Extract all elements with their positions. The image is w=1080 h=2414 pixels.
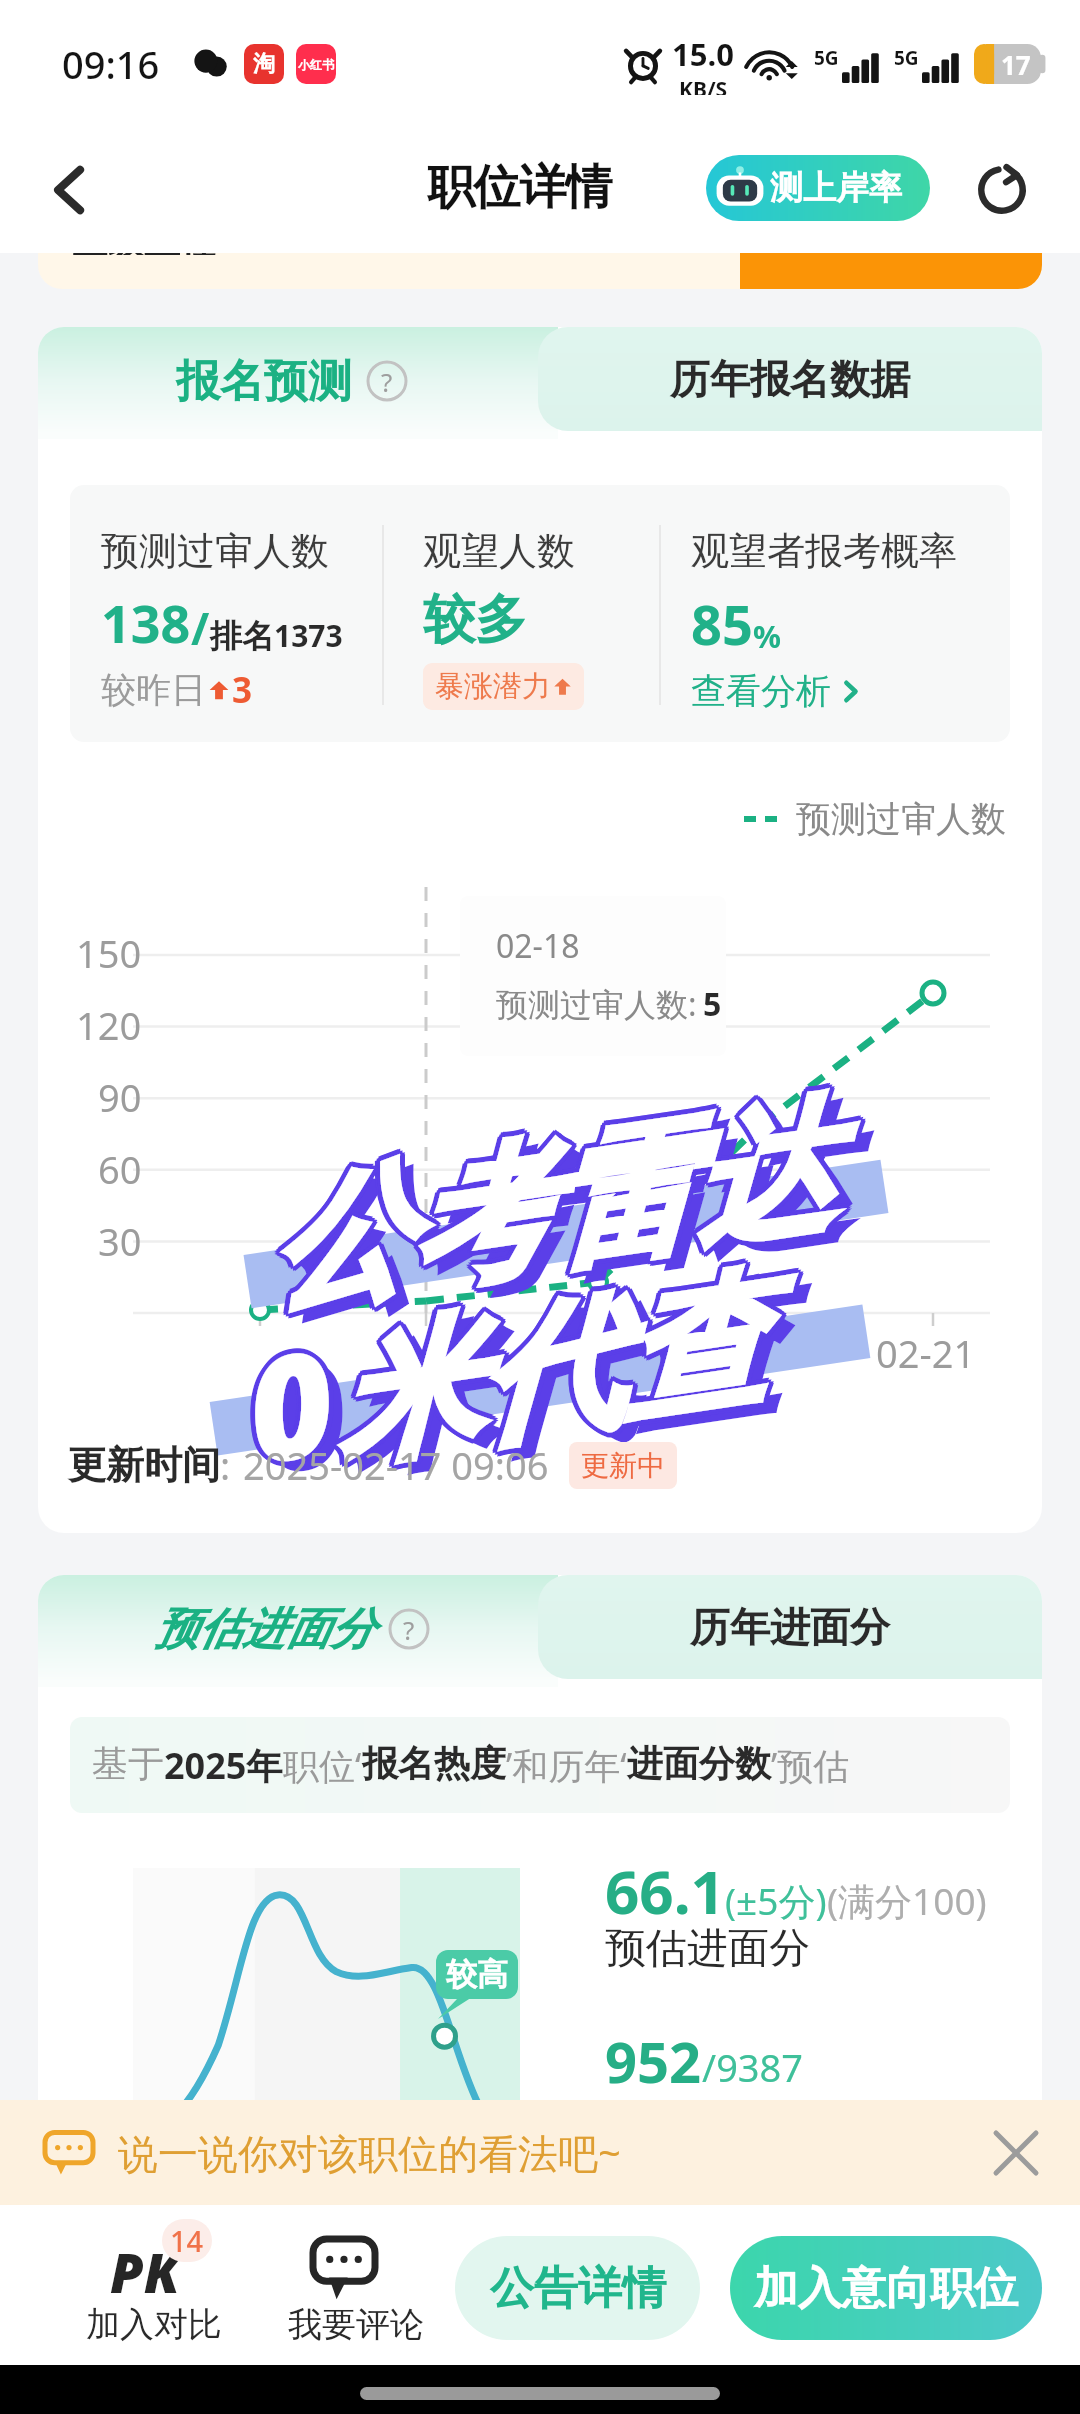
staticText: 预测过审人数: [101, 527, 329, 575]
staticText: ’和历年‘: [506, 1741, 627, 1790]
staticText: 公考雷达: [249, 1075, 838, 1336]
staticText: 三级主任: [72, 253, 216, 255]
staticText: 报名热度: [362, 1741, 506, 1786]
staticText: 公考雷达: [253, 1078, 841, 1339]
staticText: 2025-02-17 09:06: [243, 1439, 549, 1491]
staticText: 120: [76, 999, 142, 1051]
staticText: 暴涨潜力: [435, 668, 551, 705]
staticText: 查看分析: [691, 669, 831, 713]
staticText: 0米代查: [232, 1239, 771, 1510]
staticText: /: [191, 598, 210, 658]
button[interactable]: Refresh: [960, 148, 1044, 232]
button[interactable]: 报名预测: [38, 327, 546, 435]
button[interactable]: 测上岸率: [706, 155, 930, 221]
staticText: 公告详情: [490, 2261, 666, 2316]
button[interactable]: 公告详情: [455, 2236, 700, 2340]
staticText: 5G: [814, 45, 839, 71]
staticText: 公考雷达: [248, 1080, 836, 1341]
staticText: 30: [98, 1215, 142, 1267]
staticText: 0米代查: [248, 1246, 787, 1517]
staticText: 淘: [253, 50, 275, 78]
button[interactable]: 查看分析: [691, 669, 862, 713]
staticText: 公考雷达: [250, 1081, 839, 1342]
staticText: 1373: [274, 615, 343, 656]
staticText: %: [753, 615, 781, 657]
staticText: 0米代查: [234, 1241, 773, 1512]
staticText: 报名预测: [176, 354, 352, 409]
staticText: 公考雷达: [253, 1073, 841, 1334]
staticText: 小红书: [298, 57, 334, 72]
staticText: 公考雷达: [256, 1077, 844, 1338]
staticText: 5: [703, 982, 722, 1026]
staticText: 0米代查: [236, 1241, 775, 1512]
staticText: 较昨日: [101, 668, 206, 712]
staticText: 5G: [894, 45, 919, 71]
staticText: 更新时间: [68, 1441, 220, 1489]
staticText: 0米代查: [237, 1232, 776, 1504]
button[interactable]: 说一说你对该职位的看法吧~: [0, 2100, 1080, 2205]
staticText: 说一说你对该职位的看法吧~: [118, 2125, 621, 2180]
button[interactable]: Back: [28, 148, 112, 232]
button[interactable]: 历年进面分: [538, 1575, 1042, 1679]
staticText: 公考雷达: [250, 1077, 838, 1338]
staticText: 预测过审人数:: [496, 982, 697, 1026]
staticText: ?: [381, 364, 393, 399]
staticText: 公考雷达: [255, 1075, 844, 1336]
button[interactable]: Help: [388, 1608, 430, 1650]
staticText: 预估进面分: [605, 1923, 810, 1975]
staticText: 较多: [423, 587, 527, 653]
staticText: 公考雷达: [251, 1075, 840, 1336]
staticText: 基于: [92, 1741, 164, 1786]
staticText: 公考雷达: [251, 1073, 839, 1334]
staticText: 02-21: [876, 1327, 976, 1379]
staticText: 公考雷达: [250, 1079, 838, 1340]
staticText: 历年报名数据: [670, 354, 910, 404]
staticText: 0米代查: [239, 1236, 779, 1507]
staticText: 公考雷达: [255, 1083, 843, 1344]
staticText: 加入意向职位: [754, 2261, 1018, 2316]
staticText: ’预估: [771, 1741, 850, 1790]
staticText: 0米代查: [237, 1234, 777, 1506]
staticText: 0: [756, 1327, 778, 1379]
staticText: 02-18: [496, 924, 580, 968]
button[interactable]: PK: [58, 2215, 228, 2355]
staticText: 公考雷达: [258, 1078, 846, 1339]
staticText: 公考雷达: [253, 1083, 841, 1344]
staticText: 进面分数: [627, 1741, 771, 1786]
staticText: PK: [110, 2235, 180, 2309]
button[interactable]: 我要评论: [258, 2215, 433, 2355]
staticText: 较高: [446, 1955, 508, 1994]
staticText: 15.0: [672, 33, 734, 75]
staticText: 0米代查: [235, 1233, 774, 1504]
staticText: 我要评论: [288, 2303, 424, 2346]
staticText: (±5分): [725, 1875, 827, 1926]
staticText: 60: [98, 1143, 142, 1195]
staticText: 0米代查: [238, 1238, 777, 1510]
staticText: 0米代查: [234, 1236, 774, 1507]
button[interactable]: Help: [366, 360, 408, 402]
staticText: 3: [232, 666, 253, 714]
staticText: 0米代查: [229, 1238, 769, 1509]
staticText: 公考雷达: [256, 1080, 844, 1341]
staticText: 预测过审人数: [796, 797, 1006, 841]
button[interactable]: 预估进面分: [38, 1575, 546, 1683]
staticText: 0米代查: [234, 1239, 773, 1510]
button[interactable]: Close: [988, 2125, 1044, 2181]
staticText: 公考雷达: [252, 1081, 840, 1342]
staticText: 公考雷达: [248, 1078, 836, 1339]
staticText: 0米代查: [237, 1236, 777, 1508]
staticText: 0米代查: [229, 1236, 769, 1507]
button[interactable]: 加入意向职位: [730, 2236, 1042, 2340]
staticText: 加入对比: [86, 2303, 222, 2346]
staticText: 2025年: [164, 1741, 283, 1790]
button[interactable]: 历年报名数据: [538, 327, 1042, 431]
staticText: 测上岸率: [770, 167, 902, 209]
staticText: 0米代查: [233, 1233, 772, 1504]
staticText: 公考雷达: [254, 1081, 842, 1342]
staticText: ?: [403, 1612, 415, 1647]
staticText: 0米代查: [231, 1237, 771, 1508]
staticText: 排名: [210, 616, 274, 656]
staticText: 17: [1001, 47, 1031, 82]
staticText: 0米代查: [231, 1233, 770, 1504]
staticText: 0米代查: [231, 1235, 771, 1506]
